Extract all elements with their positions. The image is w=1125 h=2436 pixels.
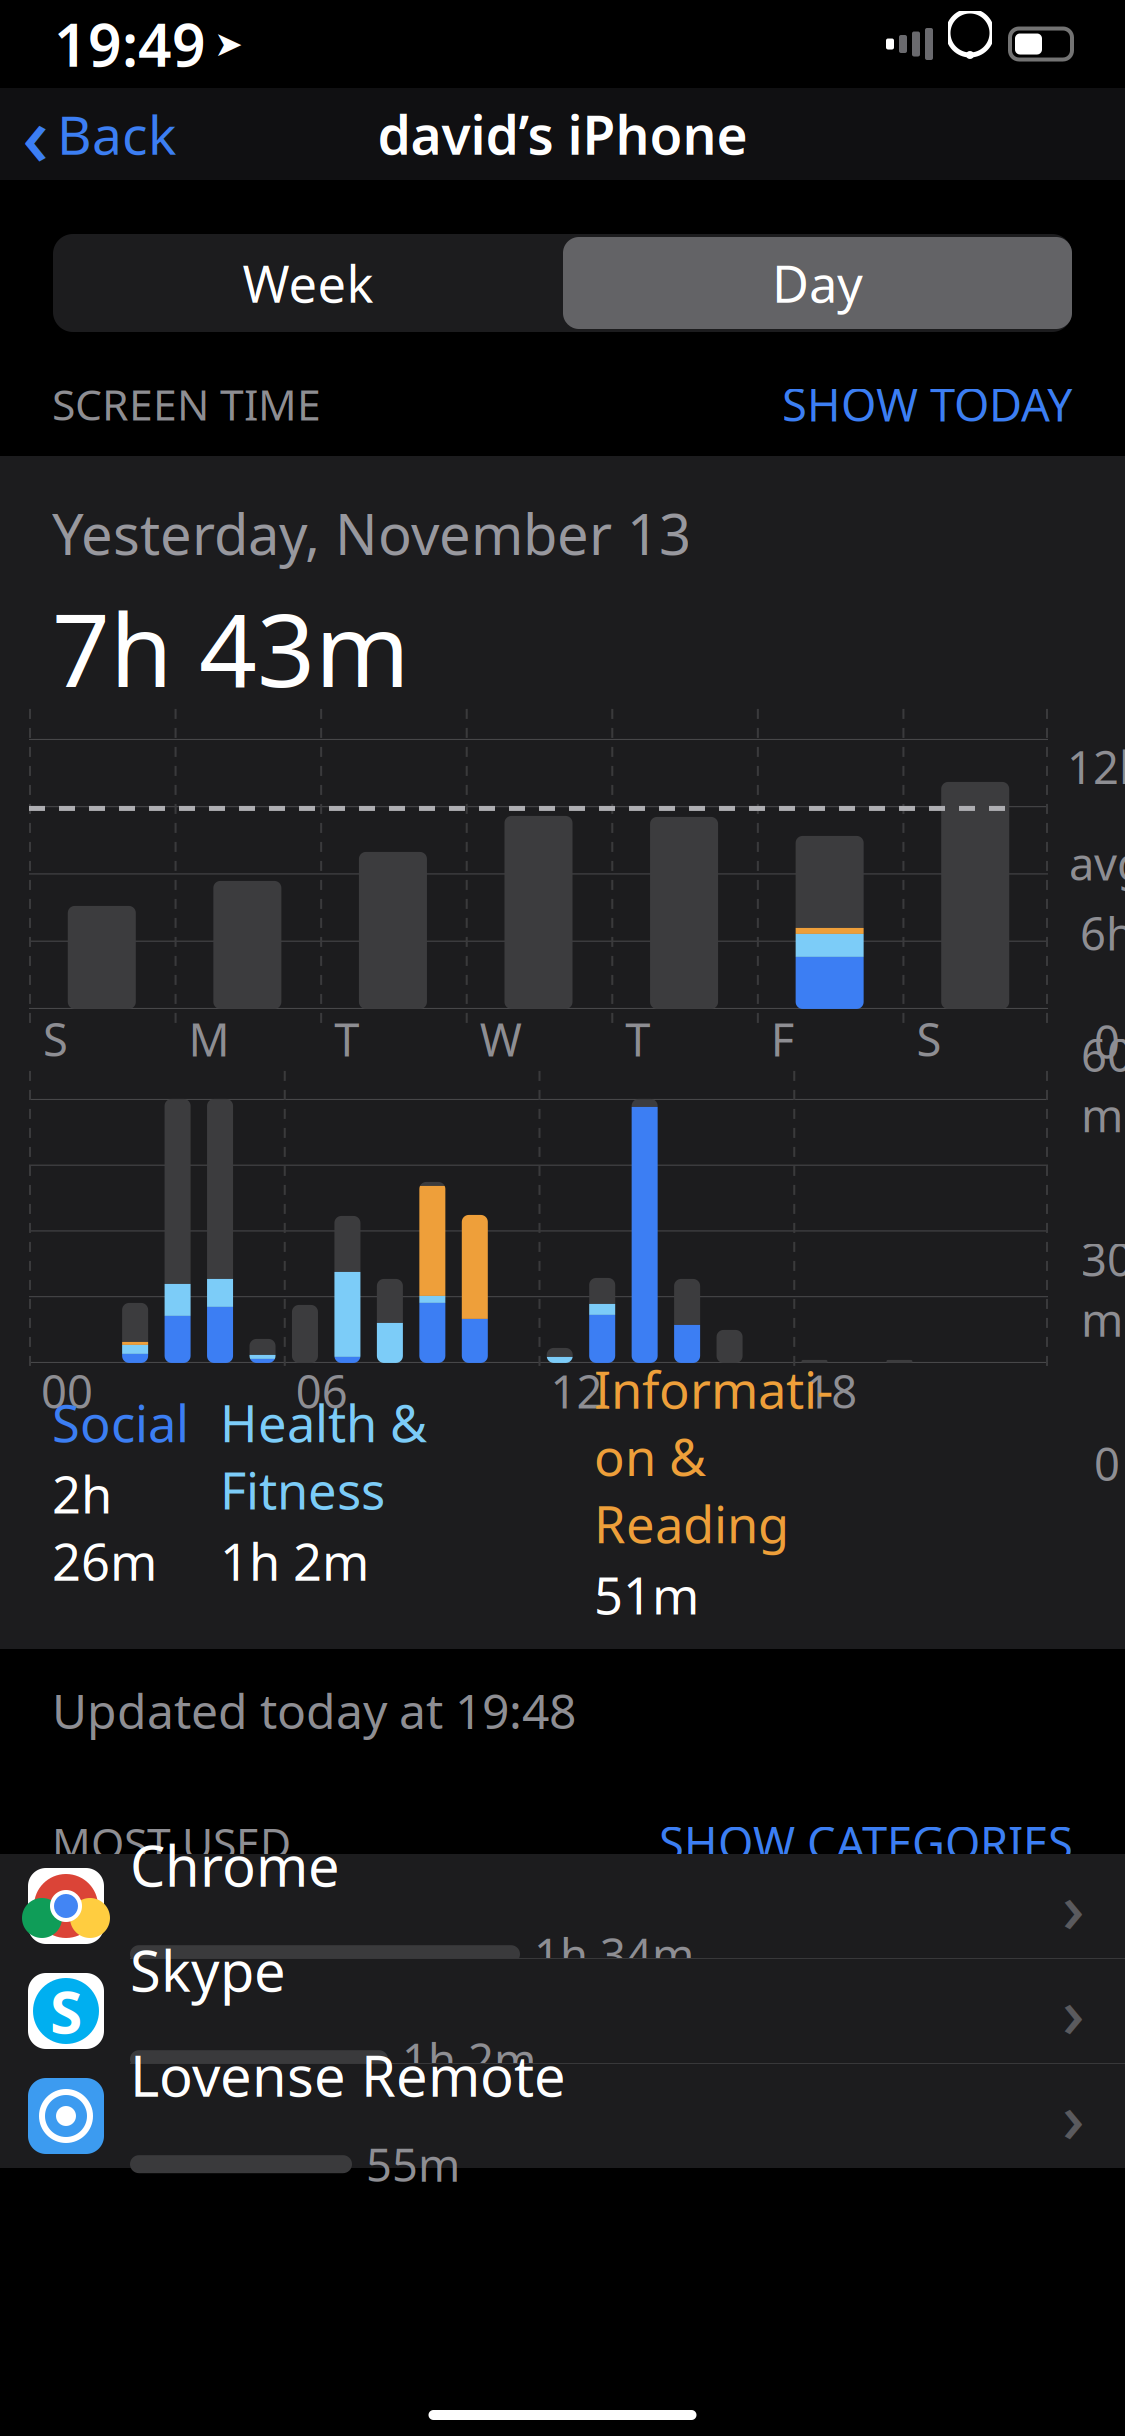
- staticText: 12h: [1067, 736, 1125, 797]
- staticText: 00: [41, 1361, 93, 1421]
- staticText: ›: [1062, 1965, 1085, 2057]
- staticText: SHOW CATEGORIES: [659, 1812, 1073, 1872]
- button[interactable]: ‹: [0, 88, 190, 180]
- staticText: 30m: [1081, 1229, 1125, 1349]
- staticText: 7h 43m: [52, 580, 410, 715]
- staticText: SHOW TODAY: [782, 374, 1073, 434]
- staticText: ➤: [214, 24, 243, 64]
- staticText: 1h 34m: [534, 1924, 694, 1984]
- staticText: Week: [242, 249, 373, 317]
- staticText: 12: [550, 1361, 602, 1421]
- staticText: ›: [1062, 2070, 1085, 2162]
- staticText: SCREEN TIME: [52, 376, 321, 432]
- staticText: S: [916, 1009, 941, 1069]
- button[interactable]: Day: [563, 234, 1072, 332]
- staticText: 19:49: [54, 5, 206, 83]
- staticText: T: [625, 1009, 650, 1069]
- button[interactable]: Chrome: [0, 1854, 1125, 1959]
- staticText: 60m: [1081, 1024, 1125, 1145]
- staticText: Yesterday, November 13: [52, 496, 691, 570]
- staticText: M: [189, 1009, 230, 1069]
- staticText: 0: [1094, 1433, 1120, 1493]
- staticText: 6h: [1080, 903, 1125, 963]
- staticText: 1h 2m: [220, 1528, 369, 1595]
- staticText: 0: [1094, 1011, 1120, 1071]
- staticText: ‹: [22, 79, 49, 189]
- staticText: 2h 26m: [52, 1460, 157, 1595]
- staticText: Health & Fitness: [220, 1389, 427, 1524]
- button[interactable]: S: [0, 1959, 1125, 2064]
- staticText: 1h 2m: [402, 2029, 536, 2089]
- staticText: S: [43, 1009, 68, 1069]
- staticText: 06: [296, 1361, 348, 1421]
- button[interactable]: Lovense Remote: [0, 2064, 1125, 2168]
- button[interactable]: SHOW CATEGORIES: [659, 1812, 1073, 1872]
- button[interactable]: Week: [53, 234, 563, 332]
- staticText: Skype: [130, 1933, 286, 2007]
- staticText: Updated today at 19:48: [52, 1679, 576, 1742]
- staticText: 51m: [594, 1561, 699, 1628]
- staticText: Information & Reading: [594, 1355, 833, 1557]
- staticText: 18: [805, 1361, 857, 1421]
- staticText: F: [771, 1009, 795, 1069]
- staticText: david’s iPhone: [377, 99, 747, 169]
- staticText: Chrome: [130, 1828, 340, 1902]
- staticText: 55m: [366, 2134, 460, 2194]
- staticText: ›: [1062, 1860, 1085, 1952]
- staticText: Social: [52, 1389, 189, 1456]
- staticText: W: [480, 1009, 522, 1069]
- staticText: Back: [57, 99, 176, 169]
- staticText: MOST USED: [52, 1814, 291, 1871]
- staticText: S: [50, 1972, 82, 2050]
- staticText: T: [334, 1009, 359, 1069]
- staticText: Day: [772, 249, 863, 317]
- staticText: avg: [1069, 833, 1125, 893]
- staticText: Lovense Remote: [130, 2038, 566, 2112]
- button[interactable]: SHOW TODAY: [782, 374, 1073, 434]
